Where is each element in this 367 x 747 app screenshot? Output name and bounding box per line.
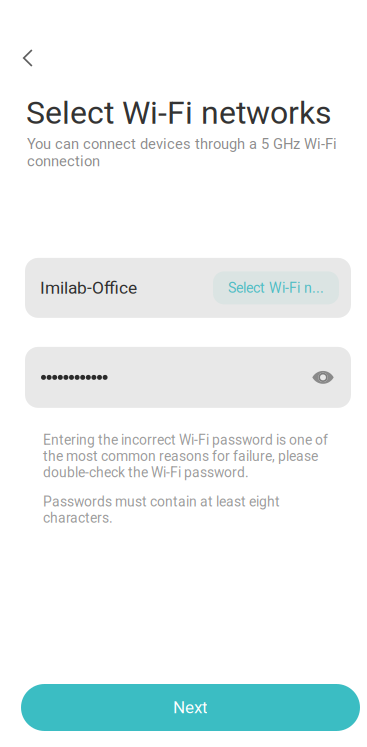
button[interactable]: Show password bbox=[306, 360, 340, 394]
button[interactable]: Back bbox=[6, 36, 50, 80]
staticText: Next bbox=[173, 697, 208, 717]
button[interactable]: Select Wi-Fi n... bbox=[213, 271, 339, 304]
staticText: Imilab-Office bbox=[40, 278, 137, 298]
button[interactable]: Next bbox=[21, 684, 360, 731]
staticText: You can connect devices through a 5 GHz … bbox=[27, 135, 337, 153]
button[interactable]: Wi-Fi network name bbox=[25, 258, 351, 318]
staticText: Select Wi-Fi networks bbox=[26, 94, 332, 131]
staticText: Select Wi-Fi n... bbox=[228, 280, 324, 296]
staticText: Entering the incorrect Wi-Fi password is… bbox=[43, 432, 328, 448]
staticText: the most common reasons for failure, ple… bbox=[43, 448, 318, 464]
staticText: Passwords must contain at least eight bbox=[43, 494, 280, 510]
staticText: double-check the Wi-Fi password. bbox=[43, 464, 249, 481]
staticText: characters. bbox=[43, 510, 113, 526]
button[interactable]: Wi-Fi password bbox=[25, 347, 351, 408]
staticText: connection bbox=[27, 153, 100, 170]
